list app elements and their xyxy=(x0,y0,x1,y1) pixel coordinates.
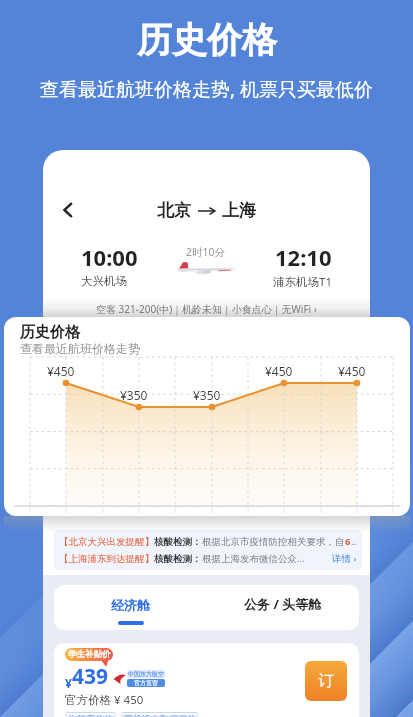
staticText: ¥350 xyxy=(120,387,148,403)
staticText: 10:00 xyxy=(81,242,138,272)
staticText: 经济舱 xyxy=(111,597,150,613)
staticText: 官方直营 xyxy=(134,679,158,687)
staticText: 学生补贴价 xyxy=(68,649,111,660)
staticText: 官方价格 ¥ 450 xyxy=(65,692,144,708)
staticText: 可机场自取行程单 xyxy=(124,713,196,716)
staticText: ... xyxy=(351,535,357,548)
staticText: 查看最近航班价格走势, 机票只买最低价 xyxy=(40,76,374,102)
staticText: 详情 › xyxy=(332,552,357,565)
staticText: 空客 321-200(中)｜机龄未知｜小食点心｜无WiFi › xyxy=(96,302,317,316)
staticText: 订 xyxy=(318,671,334,691)
staticText: 核酸检测： xyxy=(154,536,202,548)
staticText: ¥450 xyxy=(47,363,75,379)
staticText: ¥ xyxy=(65,675,72,691)
staticText: ¥450 xyxy=(265,363,293,379)
staticText: 浦东机场T1 xyxy=(273,274,332,290)
staticText: 根据北京市疫情防控相关要求，自 xyxy=(202,536,345,548)
staticText: 【上海浦东到达提醒】 xyxy=(59,553,154,565)
staticText: 2时10分 xyxy=(186,245,226,259)
button[interactable]: 经济舱 xyxy=(54,585,206,630)
staticText: ¥350 xyxy=(193,387,221,403)
staticText: 6 xyxy=(345,535,351,548)
staticText: 【北京大兴出发提醒】 xyxy=(59,536,154,548)
staticText: 旗舰店价格 xyxy=(68,713,113,716)
staticText: 上海 xyxy=(222,200,256,221)
staticText: 核酸检测： xyxy=(154,553,202,565)
staticText: 根据上海发布微信公众... xyxy=(202,552,305,565)
staticText: 12:10 xyxy=(275,242,332,272)
staticText: 大兴机场 xyxy=(81,274,127,288)
button[interactable]: Back xyxy=(51,193,85,227)
staticText: 历史价格 xyxy=(20,323,80,342)
staticText: 中国东方航空 xyxy=(128,670,164,678)
staticText: 查看最近航班价格走势 xyxy=(20,341,140,356)
button[interactable]: 订 xyxy=(305,661,347,701)
staticText: 历史价格 xyxy=(137,18,277,62)
staticText: 公务 / 头等舱 xyxy=(244,595,322,613)
button[interactable]: 公务 / 头等舱 xyxy=(206,585,359,630)
staticText: 439 xyxy=(72,662,109,691)
staticText: 北京 xyxy=(157,200,191,221)
staticText: ¥450 xyxy=(338,363,366,379)
